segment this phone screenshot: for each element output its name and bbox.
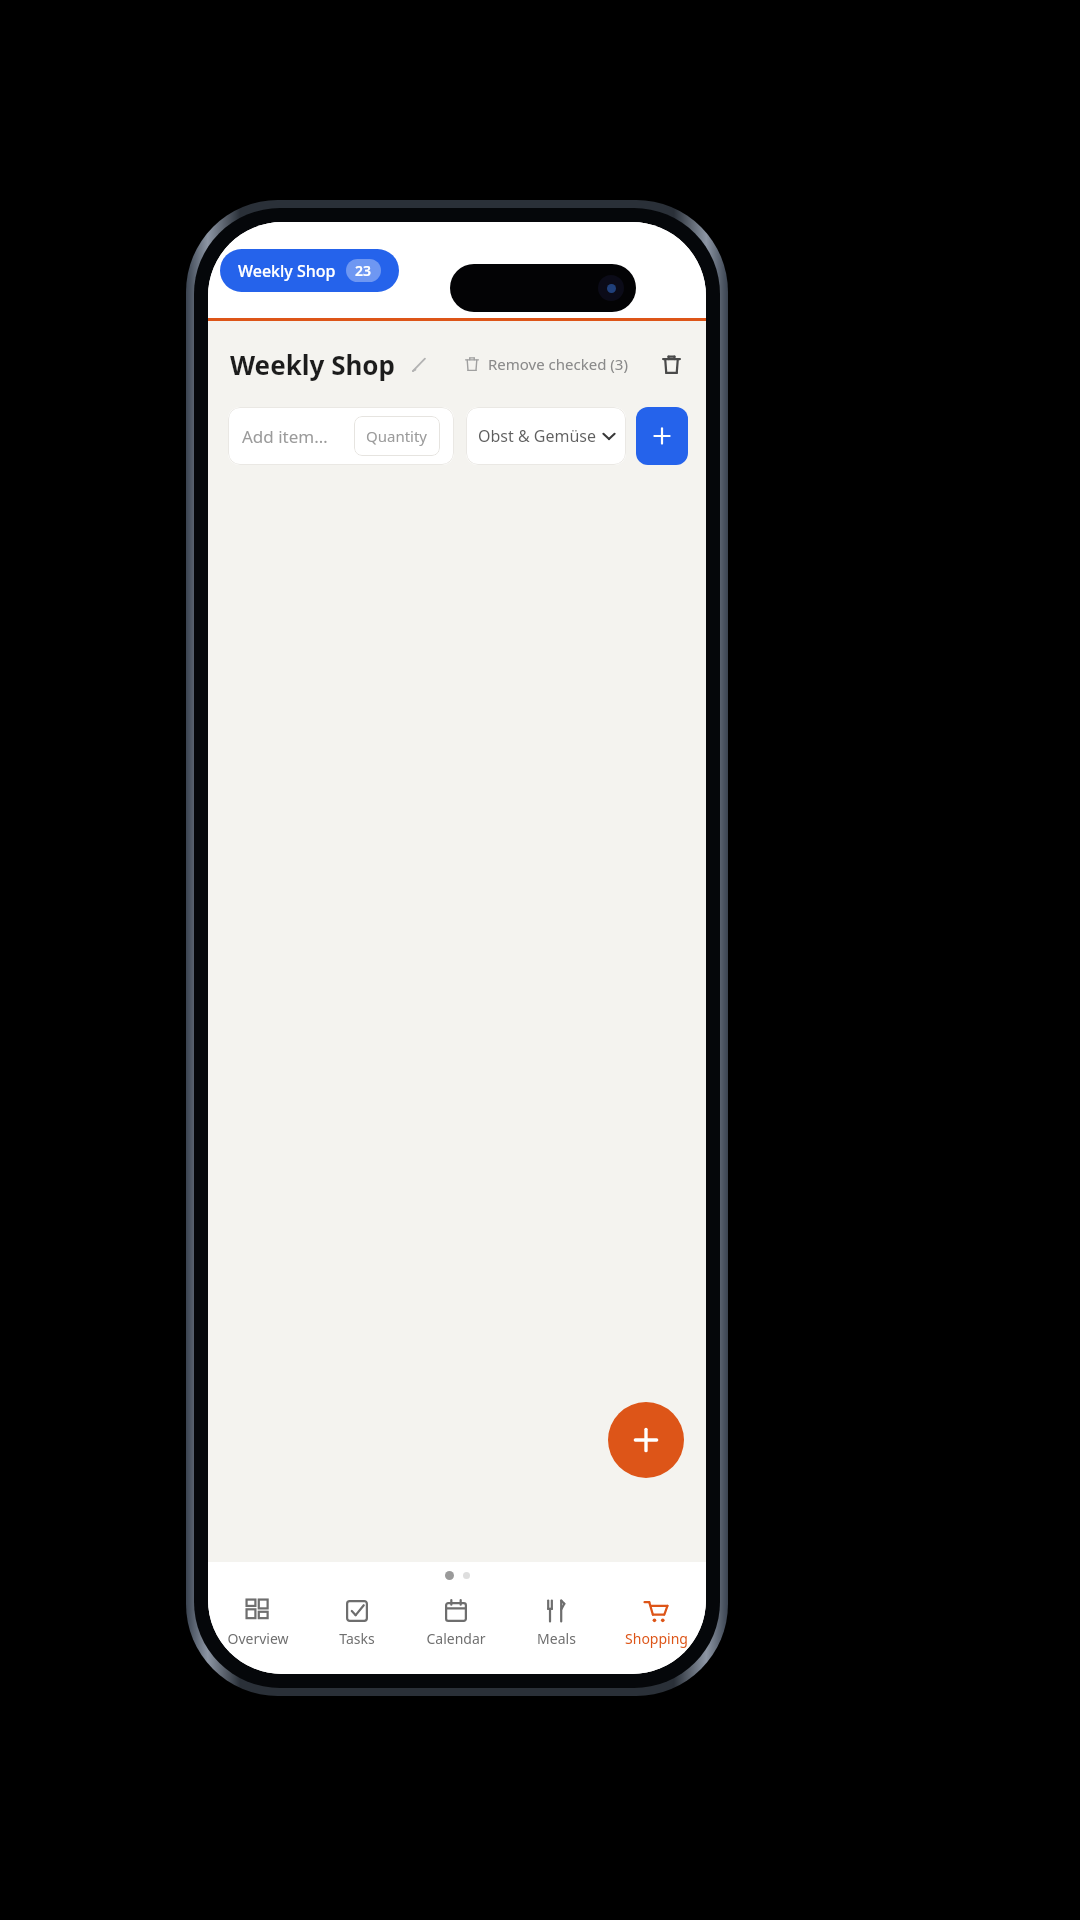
button[interactable]: Obst & Gemüse [466,407,626,465]
staticText: Obst & Gemüse [478,425,597,447]
staticText: Shopping [625,1629,688,1648]
staticText: Weekly Shop [238,260,336,282]
staticText: Quantity [366,426,428,446]
button[interactable]: Calendar [406,1588,506,1674]
button[interactable]: Weekly Shop [220,249,399,292]
staticText: Tasks [339,1629,375,1648]
button[interactable]: Delete list [654,347,688,381]
button[interactable]: Shopping [606,1588,706,1674]
button[interactable]: Rename list [406,351,432,377]
staticText: Overview [227,1629,289,1648]
staticText: 23 [355,261,372,280]
staticText: Calendar [426,1629,486,1648]
button[interactable]: Overview [208,1588,307,1674]
staticText: Meals [537,1629,576,1648]
button[interactable]: Add item… [228,407,454,465]
staticText: Weekly Shop [230,347,396,382]
button[interactable]: Tasks [307,1588,406,1674]
staticText: Remove checked (3) [488,354,628,374]
button[interactable]: Quantity [354,416,440,456]
button[interactable]: Add item [636,407,688,465]
button[interactable]: Add [608,1402,684,1478]
staticText: Add item… [242,425,328,448]
button[interactable]: Remove checked (3) [460,348,632,380]
button[interactable]: Meals [506,1588,606,1674]
